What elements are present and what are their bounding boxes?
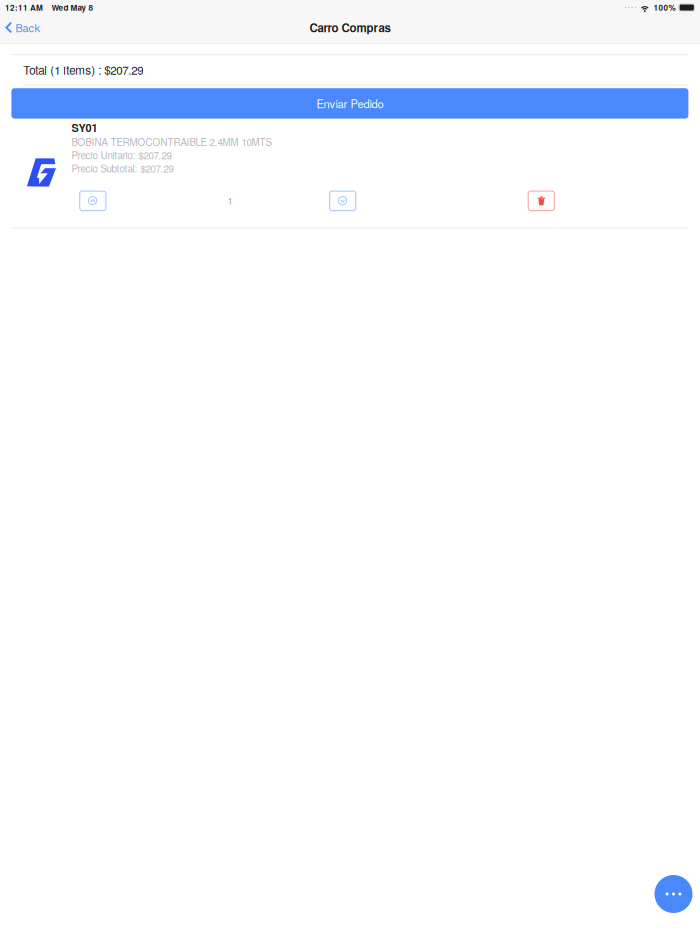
staticText: Wed May 8 [51, 2, 93, 13]
staticText: 12:11 AM [5, 2, 43, 13]
staticText: BOBINA TERMOCONTRAIBLE 2.4MM 10MTS [71, 135, 271, 149]
staticText: Precio Unitario: $207.29 [71, 148, 171, 162]
button[interactable]: Increase quantity [80, 191, 106, 211]
staticText: 1 [227, 194, 232, 207]
staticText: SY01 [71, 120, 97, 135]
button[interactable]: Back [0, 16, 47, 38]
staticText: 100% [653, 2, 675, 13]
button[interactable]: Enviar Pedido [11, 88, 688, 119]
staticText: Carro Compras [309, 19, 390, 36]
button[interactable]: More options [654, 875, 692, 913]
staticText: Total (1 items) : $207.29 [23, 61, 143, 78]
button[interactable]: Remove item [528, 191, 554, 211]
staticText: Back [16, 20, 40, 35]
button[interactable]: Decrease quantity [330, 191, 356, 211]
staticText: Enviar Pedido [316, 95, 383, 111]
staticText: Precio Subtotal: $207.29 [71, 161, 173, 175]
